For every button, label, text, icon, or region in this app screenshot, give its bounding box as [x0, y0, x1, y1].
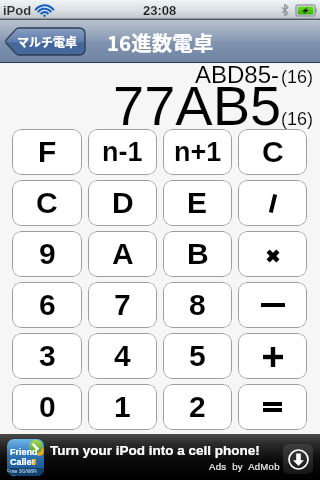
button[interactable]: マルチ電卓	[5, 28, 85, 55]
staticText: n+1	[174, 137, 222, 167]
button[interactable]: Friend	[0, 434, 320, 480]
button[interactable]: 4	[88, 333, 157, 379]
staticText: 1	[114, 390, 131, 424]
button[interactable]: n-1	[88, 129, 157, 175]
staticText: 4	[114, 339, 131, 373]
staticText: Friend	[10, 447, 38, 457]
button[interactable]: ×	[238, 231, 307, 277]
button[interactable]: −	[238, 282, 307, 328]
button[interactable]: E	[163, 180, 232, 226]
staticText: Free 3G/WiFi calls	[7, 468, 44, 476]
staticText: Caller	[10, 457, 36, 467]
button[interactable]: Download	[283, 444, 313, 474]
button[interactable]: 3	[12, 333, 82, 379]
staticText: A	[112, 237, 134, 271]
staticText: 7	[114, 288, 131, 322]
staticText: Turn your iPod into a cell phone!	[50, 443, 260, 458]
staticText: マルチ電卓	[17, 33, 78, 50]
staticText: C	[36, 186, 58, 220]
staticText: 23:08	[143, 3, 177, 18]
button[interactable]: 1	[88, 384, 157, 430]
button[interactable]: =	[238, 384, 307, 430]
button[interactable]: C	[238, 129, 307, 175]
button[interactable]: 8	[163, 282, 232, 328]
staticText: 3	[31, 456, 37, 467]
staticText: 0	[39, 390, 56, 424]
button[interactable]: /	[238, 180, 307, 226]
staticText: F	[38, 135, 57, 169]
staticText: C	[262, 135, 284, 169]
staticText: ABD85-	[195, 61, 280, 88]
button[interactable]: D	[88, 180, 157, 226]
staticText: 5	[189, 339, 206, 373]
button[interactable]: n+1	[163, 129, 232, 175]
staticText: 9	[39, 237, 56, 271]
button[interactable]: 0	[12, 384, 82, 430]
button[interactable]: 5	[163, 333, 232, 379]
staticText: 16進数電卓	[107, 27, 214, 57]
staticText: D	[112, 186, 134, 220]
button[interactable]: A	[88, 231, 157, 277]
button[interactable]: +	[238, 333, 307, 379]
button[interactable]: 7	[88, 282, 157, 328]
staticText: Ads by AdMob	[209, 461, 280, 472]
staticText: 3	[39, 339, 56, 373]
button[interactable]: 2	[163, 384, 232, 430]
staticText: 2	[189, 390, 206, 424]
staticText: E	[187, 186, 208, 220]
button[interactable]: 9	[12, 231, 82, 277]
staticText: 8	[189, 288, 206, 322]
staticText: 6	[39, 288, 56, 322]
button[interactable]: B	[163, 231, 232, 277]
staticText: iPod	[3, 3, 32, 18]
staticText: 77AB5	[113, 74, 282, 137]
button[interactable]: C	[12, 180, 82, 226]
staticText: (16)	[281, 109, 314, 129]
button[interactable]: F	[12, 129, 82, 175]
staticText: (16)	[281, 67, 314, 87]
staticText: B	[187, 237, 209, 271]
button[interactable]: 6	[12, 282, 82, 328]
staticText: n-1	[102, 137, 143, 167]
